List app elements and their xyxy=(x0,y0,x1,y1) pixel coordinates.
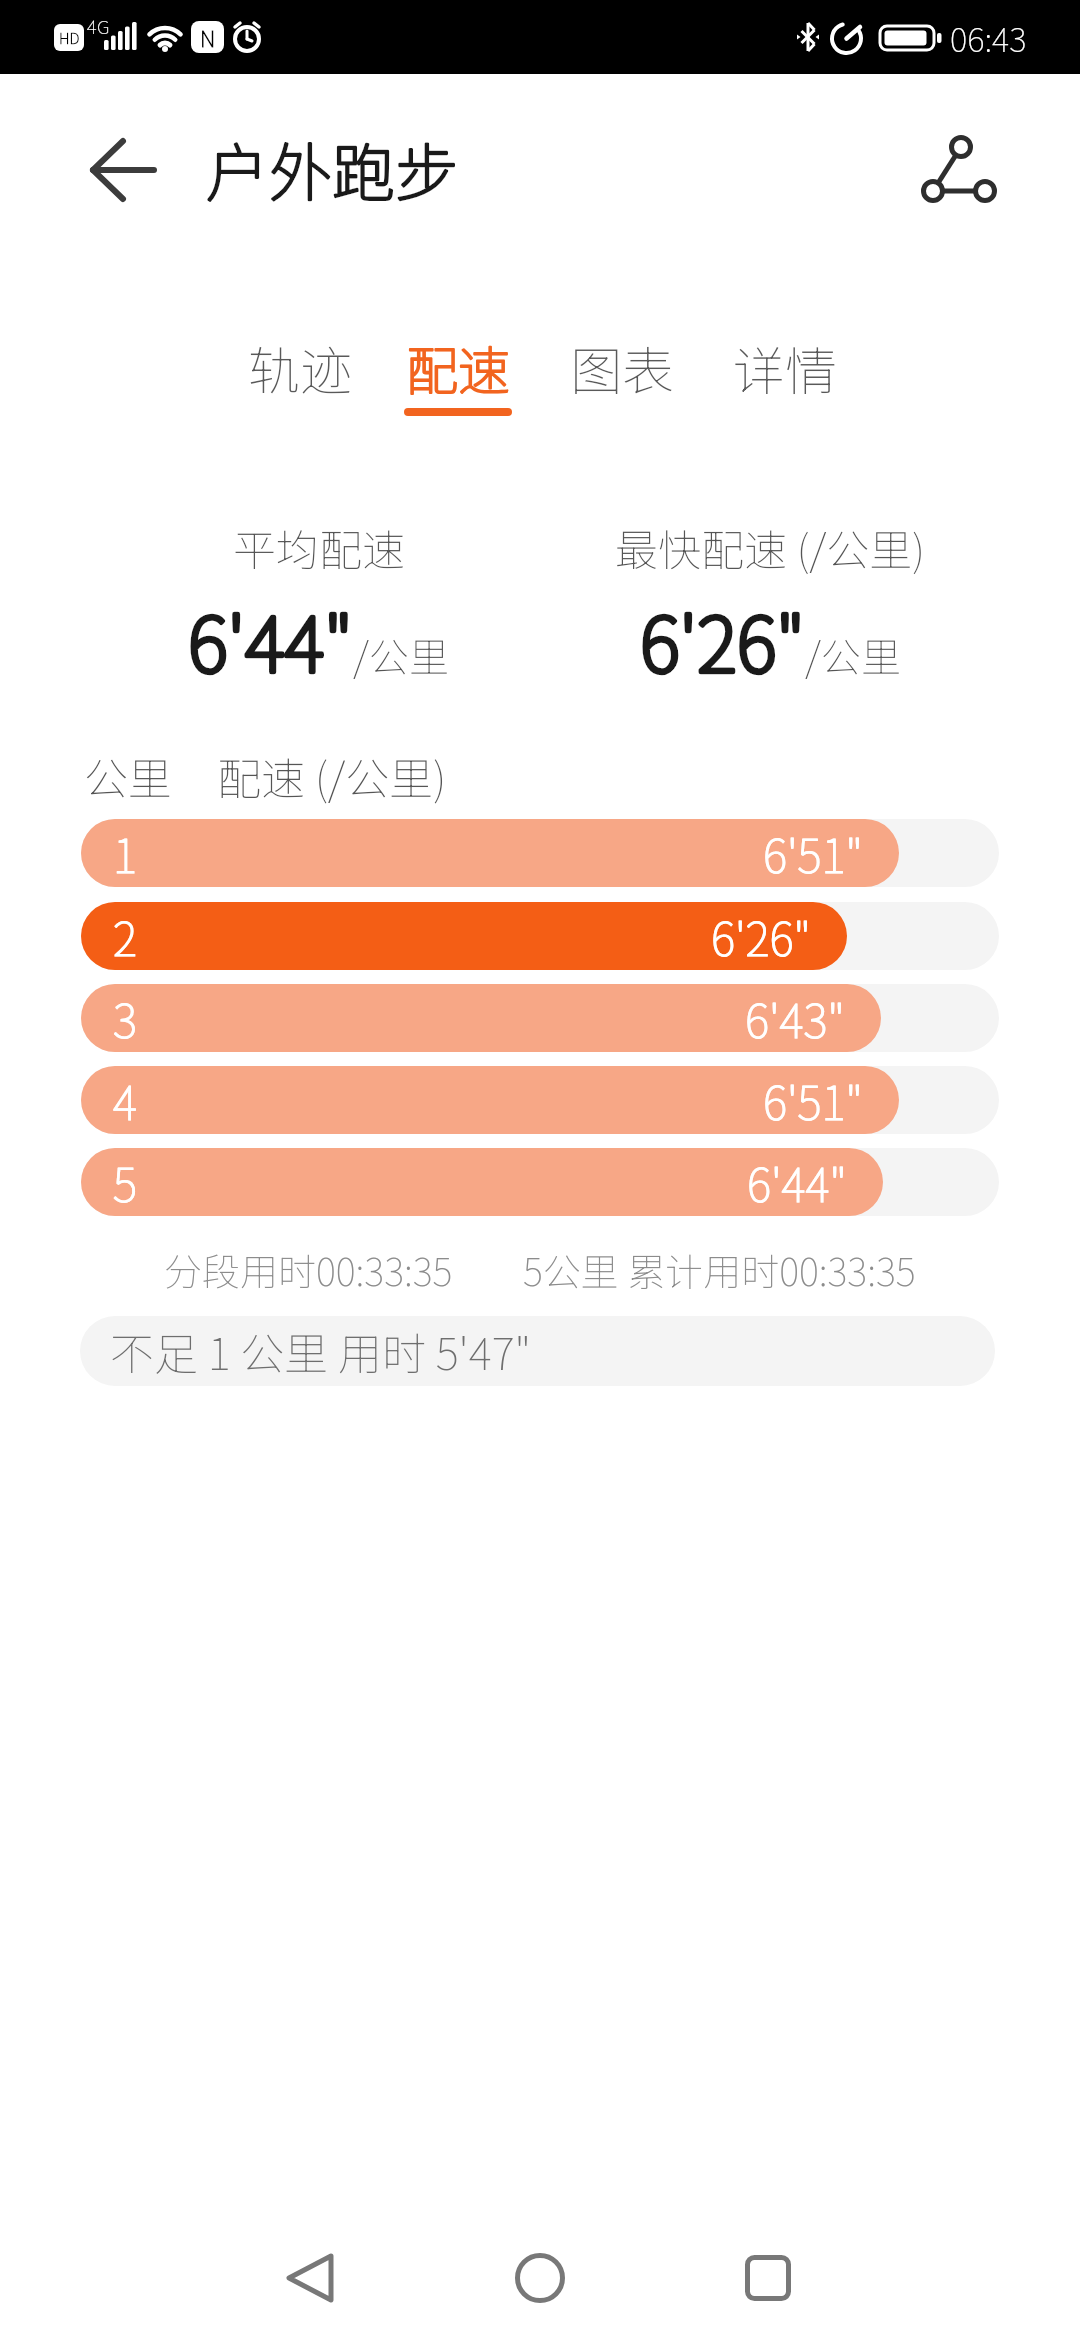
staticText: 轨迹 xyxy=(248,330,353,405)
staticText: 1 xyxy=(113,820,137,887)
staticText: 6'44" xyxy=(747,1149,847,1216)
staticText: 4 xyxy=(113,1067,137,1134)
staticText: 配速 xyxy=(406,330,511,405)
staticText: 不足 1 公里 用时 5'47" xyxy=(110,1319,532,1383)
button[interactable]: 图表 xyxy=(542,322,702,412)
staticText: 6'26" xyxy=(711,903,811,970)
staticText: 户外跑步 xyxy=(206,123,458,207)
staticText: 平均配速 xyxy=(233,516,405,578)
button[interactable]: 5 xyxy=(81,1148,883,1216)
staticText: 公里 xyxy=(84,744,172,804)
staticText: 2 xyxy=(113,903,137,970)
staticText: 5公里 累计用时00:33:35 xyxy=(523,1242,916,1297)
button[interactable]: 配速 xyxy=(378,322,538,412)
staticText: 6'43" xyxy=(745,985,845,1052)
button[interactable] xyxy=(250,2218,370,2338)
button[interactable] xyxy=(480,2218,600,2338)
button[interactable]: 2 xyxy=(81,902,847,970)
button[interactable]: 轨迹 xyxy=(220,322,380,412)
staticText: /公里 xyxy=(353,626,449,684)
staticText: N xyxy=(200,21,216,53)
staticText: 6'44" xyxy=(188,584,353,694)
staticText: 1 xyxy=(113,820,137,887)
staticText: 6'26" xyxy=(640,584,805,694)
staticText: 图表 xyxy=(570,330,675,405)
staticText: 6'43" xyxy=(745,985,845,1052)
staticText: 2 xyxy=(113,903,137,970)
staticText: 配速 xyxy=(406,330,511,405)
staticText: 6'26" xyxy=(640,584,805,694)
staticText: 4 xyxy=(113,1067,137,1134)
button[interactable]: 3 xyxy=(81,984,881,1052)
staticText: 6'51" xyxy=(763,1067,863,1134)
staticText: 户外跑步 xyxy=(206,123,458,207)
staticText: 5 xyxy=(113,1149,137,1216)
staticText: 6'44" xyxy=(188,584,353,694)
button[interactable] xyxy=(900,120,1015,220)
staticText: 配速 (/公里) xyxy=(217,744,447,804)
button[interactable] xyxy=(708,2218,828,2338)
staticText: 06:43 xyxy=(950,14,1027,60)
staticText: 详情 xyxy=(733,330,838,405)
staticText: 6'44" xyxy=(747,1149,847,1216)
button[interactable]: 1 xyxy=(81,819,899,887)
staticText: 3 xyxy=(113,985,137,1052)
staticText: 6'51" xyxy=(763,1067,863,1134)
staticText: /公里 xyxy=(805,626,901,684)
staticText: 分段用时00:33:35 xyxy=(164,1242,453,1297)
button[interactable] xyxy=(70,125,175,215)
staticText: HD xyxy=(59,27,80,49)
staticText: 最快配速 (/公里) xyxy=(615,516,926,578)
button[interactable]: 详情 xyxy=(705,322,865,412)
staticText: 4G xyxy=(87,12,110,40)
staticText: 5 xyxy=(113,1149,137,1216)
staticText: 6'51" xyxy=(763,820,863,887)
staticText: 6'51" xyxy=(763,820,863,887)
button[interactable]: 4 xyxy=(81,1066,899,1134)
staticText: 3 xyxy=(113,985,137,1052)
staticText: 6'26" xyxy=(711,903,811,970)
